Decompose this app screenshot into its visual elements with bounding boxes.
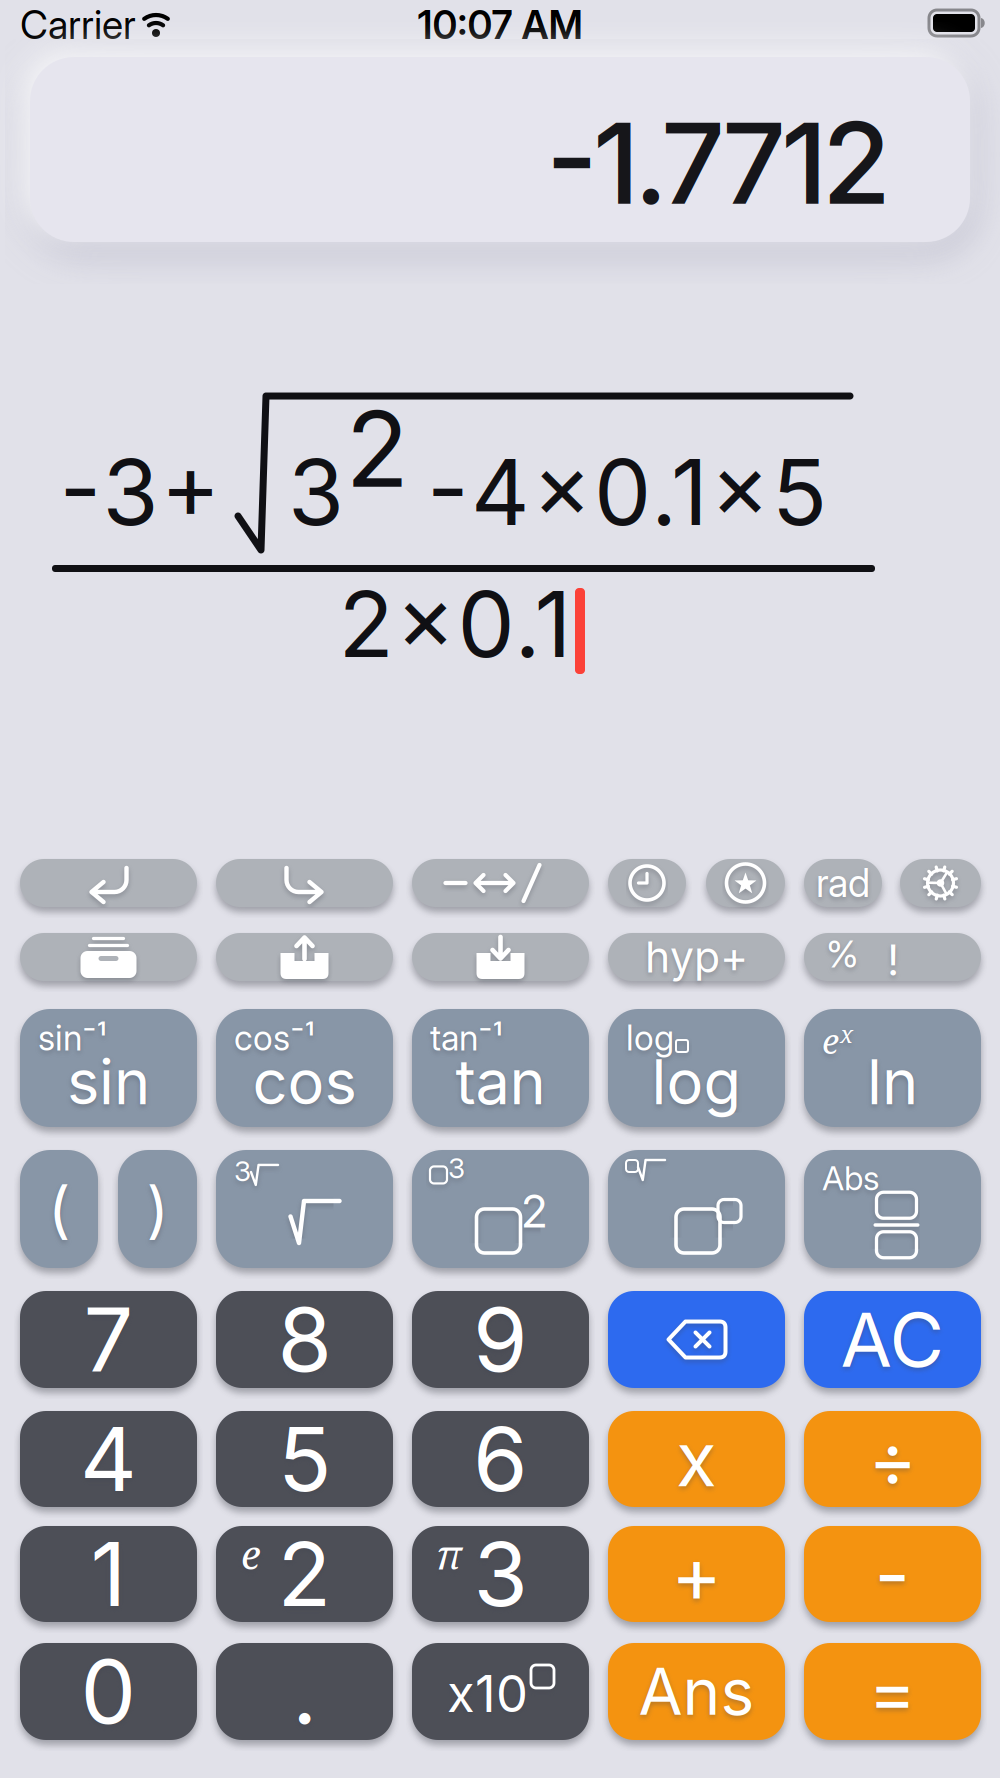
staticText: sin⁻¹	[38, 1017, 107, 1059]
staticText: -1.7712	[546, 95, 891, 231]
button[interactable]: rad	[804, 859, 882, 907]
staticText: +	[671, 1527, 722, 1621]
button[interactable]: Delete	[608, 1291, 785, 1388]
staticText: -3+	[59, 437, 220, 547]
button[interactable]: Square root	[216, 1150, 393, 1268]
button[interactable]: hyp+	[608, 933, 785, 981]
staticText: =	[868, 1648, 916, 1735]
button[interactable]: =	[804, 1643, 981, 1740]
staticText: cos	[252, 1045, 356, 1119]
button[interactable]: 4	[20, 1411, 197, 1507]
staticText: 4	[80, 1406, 137, 1512]
staticText: -	[874, 1527, 910, 1621]
button[interactable]: Square	[412, 1150, 589, 1268]
button[interactable]: )	[118, 1150, 197, 1268]
staticText: )	[146, 1172, 168, 1246]
button[interactable]: Settings	[900, 859, 981, 907]
button[interactable]: Undo	[20, 859, 197, 907]
staticText: 3	[288, 437, 344, 547]
staticText: 3	[473, 1521, 527, 1627]
button[interactable]: cos⁻¹	[216, 1009, 393, 1127]
button[interactable]: 9	[412, 1291, 589, 1388]
staticText: 7	[83, 1286, 133, 1393]
button[interactable]: Toggle sign	[412, 859, 589, 907]
staticText: log	[651, 1045, 741, 1119]
staticText: -4x0.1x5	[427, 437, 827, 547]
staticText: 3	[448, 1151, 465, 1185]
staticText: hyp+	[645, 931, 748, 983]
staticText: tan⁻¹	[430, 1017, 503, 1059]
button[interactable]: AC	[804, 1291, 981, 1388]
staticText: x	[676, 1414, 717, 1504]
staticText: π	[436, 1527, 462, 1581]
button[interactable]: .	[216, 1643, 393, 1740]
staticText: 2	[277, 1521, 331, 1627]
button[interactable]: π	[412, 1526, 589, 1622]
button[interactable]: Export	[216, 933, 393, 981]
staticText: sin	[67, 1045, 150, 1119]
button[interactable]: 6	[412, 1411, 589, 1507]
button[interactable]: 1	[20, 1526, 197, 1622]
staticText: tan	[455, 1045, 545, 1119]
button[interactable]: Import	[412, 933, 589, 981]
button[interactable]: Favorites	[706, 859, 785, 907]
staticText: 2	[345, 386, 408, 512]
button[interactable]: tan⁻¹	[412, 1009, 589, 1127]
button[interactable]: Exponent	[412, 1643, 589, 1740]
button[interactable]: -	[804, 1526, 981, 1622]
staticText: 1	[90, 1521, 126, 1627]
staticText: (	[48, 1172, 70, 1246]
button[interactable]: Ans	[608, 1643, 785, 1740]
button[interactable]: 0	[20, 1643, 197, 1740]
staticText: !	[887, 934, 899, 986]
staticText: .	[292, 1638, 317, 1745]
button[interactable]: History	[608, 859, 686, 907]
staticText: x10	[447, 1663, 528, 1724]
staticText: 5	[278, 1406, 331, 1512]
staticText: e	[241, 1527, 261, 1581]
button[interactable]: Archive	[20, 933, 197, 981]
button[interactable]: (	[20, 1150, 98, 1268]
staticText: 3	[234, 1154, 251, 1188]
staticText: 8	[277, 1286, 331, 1393]
button[interactable]: %	[804, 933, 981, 981]
button[interactable]: sin⁻¹	[20, 1009, 197, 1127]
staticText: cos⁻¹	[234, 1017, 315, 1059]
button[interactable]: Redo	[216, 859, 393, 907]
staticText: 6	[473, 1406, 528, 1512]
staticText: 9	[473, 1286, 528, 1393]
button[interactable]: x	[608, 1411, 785, 1507]
staticText: Ans	[638, 1653, 754, 1730]
staticText: e	[822, 1017, 839, 1064]
button[interactable]: 7	[20, 1291, 197, 1388]
button[interactable]: 8	[216, 1291, 393, 1388]
staticText: %	[826, 931, 859, 977]
staticText: ÷	[868, 1414, 917, 1504]
button[interactable]: 5	[216, 1411, 393, 1507]
button[interactable]: Power	[608, 1150, 785, 1268]
button[interactable]: log	[608, 1009, 785, 1127]
staticText: Carrier	[20, 2, 136, 48]
button[interactable]: +	[608, 1526, 785, 1622]
staticText: 2	[520, 1184, 548, 1238]
staticText: Abs	[822, 1158, 880, 1198]
staticText: log	[626, 1017, 674, 1059]
button[interactable]: e	[216, 1526, 393, 1622]
staticText: AC	[840, 1294, 944, 1385]
button[interactable]: Fraction	[804, 1150, 981, 1268]
staticText: 2x0.1	[338, 569, 571, 679]
staticText: 0	[80, 1638, 136, 1745]
staticText: ln	[867, 1045, 918, 1119]
staticText: x	[840, 1017, 853, 1050]
staticText: 10:07 AM	[417, 2, 582, 48]
staticText: rad	[816, 860, 870, 906]
button[interactable]: ÷	[804, 1411, 981, 1507]
button[interactable]: e	[804, 1009, 981, 1127]
